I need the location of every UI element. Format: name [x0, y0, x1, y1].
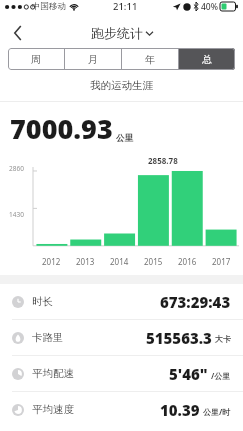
staticText: 大卡 [215, 334, 231, 344]
staticText: 2858.78 [148, 155, 178, 166]
staticText: 5'46" [169, 364, 208, 384]
button[interactable]: 时长 [0, 284, 243, 319]
button[interactable]: Back [0, 20, 36, 45]
button[interactable]: 月 [65, 48, 121, 70]
button[interactable]: 平均配速 [0, 356, 243, 391]
staticText: 21:11 [113, 0, 138, 13]
staticText: 673:29:43 [160, 292, 231, 312]
staticText: 2016 [178, 256, 197, 267]
staticText: 我的运动生涯 [0, 79, 243, 92]
staticText: 公里/时 [203, 406, 231, 417]
button[interactable]: 年 [122, 48, 178, 70]
staticText: 平均配速 [32, 367, 74, 380]
staticText: 2013 [76, 256, 95, 267]
staticText: 总 [202, 53, 212, 66]
button[interactable]: 总 [179, 48, 235, 70]
button[interactable]: 卡路里 [0, 320, 243, 355]
staticText: 2014 [110, 256, 129, 267]
staticText: 中国移动 [32, 1, 66, 12]
staticText: 年 [145, 53, 155, 66]
button[interactable]: 周 [8, 48, 64, 70]
staticText: 跑步统计 [91, 25, 143, 41]
button[interactable]: 跑步统计 [91, 25, 153, 41]
staticText: 2012 [42, 256, 61, 267]
staticText: 515563.3 [146, 328, 212, 348]
staticText: 2015 [144, 256, 163, 267]
staticText: 40% [201, 1, 218, 13]
staticText: 2860 [9, 164, 24, 173]
staticText: 2017 [212, 256, 231, 267]
staticText: 7000.93 [10, 110, 113, 147]
staticText: /公里 [211, 370, 231, 381]
staticText: 平均速度 [32, 403, 74, 416]
staticText: 时长 [32, 295, 53, 308]
staticText: 月 [88, 53, 98, 66]
staticText: 公里 [116, 133, 133, 144]
staticText: 1430 [9, 210, 24, 219]
staticText: 周 [31, 53, 41, 66]
button[interactable]: 平均速度 [0, 392, 243, 427]
staticText: 卡路里 [32, 331, 64, 344]
staticText: 10.39 [160, 400, 200, 420]
